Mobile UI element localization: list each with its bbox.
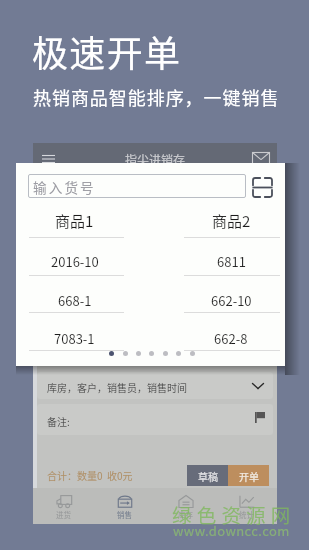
staticText: 草稿 xyxy=(198,469,218,483)
staticText: 开单 xyxy=(239,469,259,483)
button[interactable]: 消息 xyxy=(249,147,273,171)
staticText: 销售 xyxy=(117,509,132,520)
staticText: 库房，客户，销售员，销售时间 xyxy=(47,380,187,394)
staticText: 绿色资源网 xyxy=(172,500,296,528)
staticText: 热销商品智能排序，一键销售 xyxy=(33,84,280,110)
button[interactable]: 统计 xyxy=(216,488,277,524)
staticText: 统计 xyxy=(239,509,254,520)
staticText: 商品1 xyxy=(55,210,94,232)
button[interactable]: 输入货号 xyxy=(28,174,246,198)
staticText: 进货 xyxy=(56,509,71,520)
staticText: 极速开单 xyxy=(32,25,182,77)
staticText: 662-8 xyxy=(214,329,248,348)
staticText: 库存 xyxy=(178,509,193,520)
staticText: 备注: xyxy=(47,414,70,428)
staticText: www.downcc.com xyxy=(173,521,290,540)
button[interactable]: 备注: xyxy=(37,404,273,435)
button[interactable]: 菜单 xyxy=(37,147,61,171)
staticText: 662-10 xyxy=(211,291,252,310)
button[interactable]: 开单 xyxy=(228,465,269,486)
button[interactable]: 草稿 xyxy=(187,465,228,486)
staticText: 7083-1 xyxy=(54,329,95,348)
button[interactable]: 扫码 xyxy=(252,177,273,198)
staticText: 输入货号 xyxy=(33,177,96,197)
button[interactable]: 库房，客户，销售员，销售时间 xyxy=(37,372,273,399)
button[interactable]: 进货 xyxy=(33,488,94,524)
staticText: 668-1 xyxy=(58,291,92,310)
staticText: 2016-10 xyxy=(51,252,99,271)
staticText: 合计：数量0 收0元 xyxy=(47,468,133,482)
staticText: 指尖进销存 xyxy=(125,151,185,168)
button[interactable]: 销售 xyxy=(94,488,155,524)
staticText: 商品2 xyxy=(212,210,251,232)
button[interactable]: 库存 xyxy=(155,488,216,524)
staticText: 6811 xyxy=(217,252,246,271)
